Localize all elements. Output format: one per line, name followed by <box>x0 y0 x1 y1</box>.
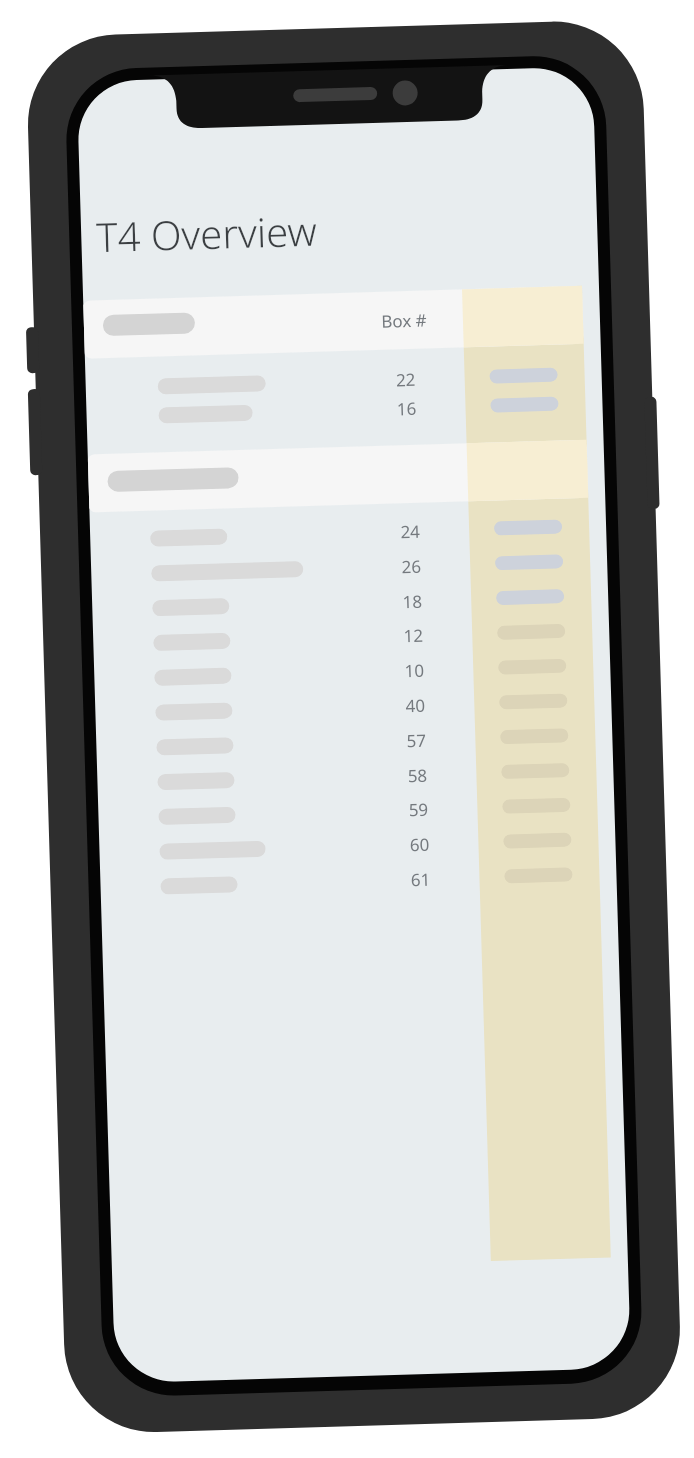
staticText: 18 <box>378 589 447 614</box>
staticText: 61 <box>386 867 455 892</box>
button[interactable]: Group header <box>87 440 588 513</box>
staticText: 40 <box>381 693 450 718</box>
button[interactable]: 59 <box>97 787 598 835</box>
button[interactable]: 58 <box>96 753 597 801</box>
staticText: 59 <box>384 797 453 822</box>
staticText: 22 <box>371 367 440 392</box>
staticText: 10 <box>380 658 449 683</box>
button[interactable]: 10 <box>93 648 594 696</box>
staticText: 60 <box>385 832 454 857</box>
button[interactable]: 22 <box>84 357 585 406</box>
staticText: 58 <box>383 763 452 788</box>
button[interactable]: 18 <box>91 579 592 627</box>
button[interactable]: 24 <box>89 509 590 557</box>
staticText: 24 <box>376 519 444 544</box>
button[interactable]: 57 <box>95 718 596 766</box>
button[interactable]: 40 <box>94 683 595 731</box>
button[interactable]: 60 <box>98 822 599 870</box>
staticText: 16 <box>372 396 441 421</box>
button[interactable]: 12 <box>92 613 593 661</box>
button[interactable]: Box # <box>82 286 584 359</box>
staticText: 26 <box>377 554 446 579</box>
staticText: 57 <box>382 728 451 753</box>
staticText: 12 <box>379 623 448 648</box>
button[interactable]: Power <box>642 397 662 509</box>
button[interactable]: 61 <box>99 857 600 905</box>
staticText: T4 Overview <box>95 203 318 263</box>
button[interactable]: 16 <box>85 386 586 435</box>
staticText: Box # <box>370 308 438 333</box>
button[interactable]: 26 <box>90 544 591 592</box>
